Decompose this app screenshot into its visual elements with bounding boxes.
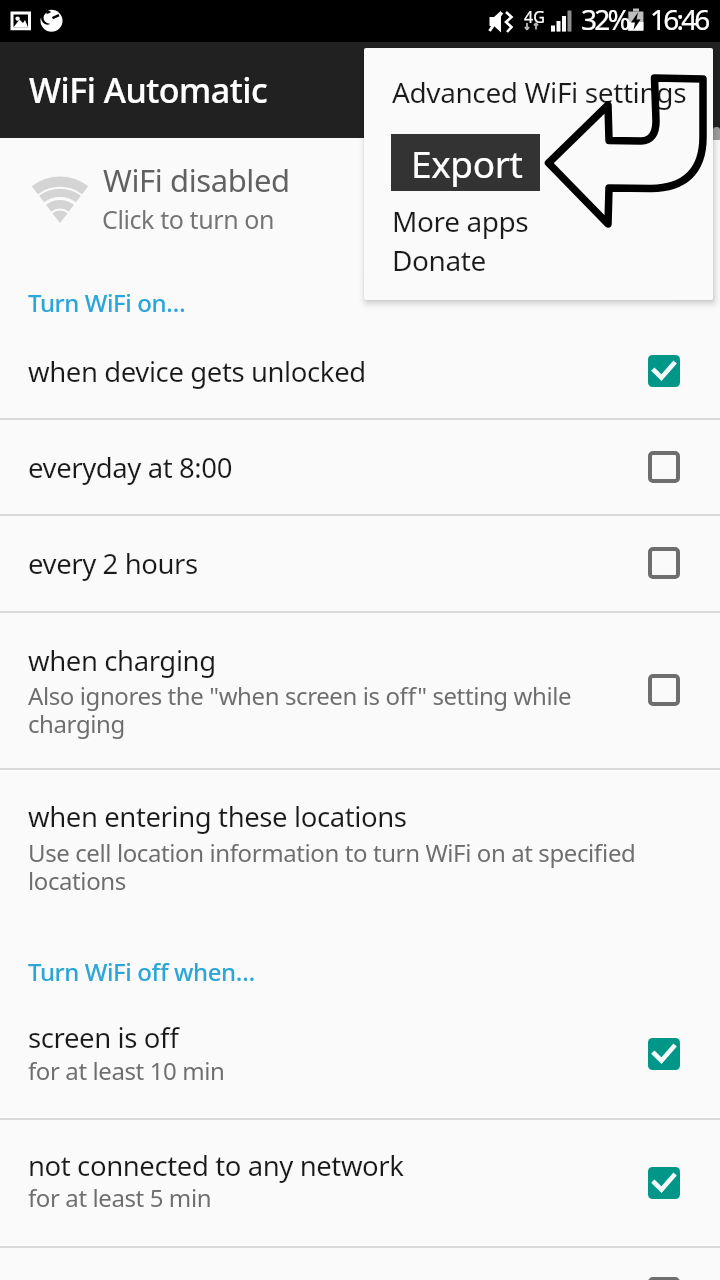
staticText: Export	[411, 138, 523, 188]
staticText: Donate	[392, 241, 486, 279]
staticText: WiFi disabled	[103, 159, 290, 201]
staticText: Click to turn on	[102, 202, 275, 236]
button[interactable]: WiFi disabled	[0, 140, 720, 285]
button[interactable]: Donate	[364, 234, 713, 286]
staticText: every 2 hours	[28, 545, 198, 582]
staticText: 16:46	[650, 0, 708, 38]
staticText: Turn WiFi on…	[28, 286, 186, 319]
staticText: Use cell location information to turn Wi…	[28, 836, 653, 897]
staticText: More apps	[392, 202, 529, 240]
staticText: Advanced WiFi settings	[392, 73, 687, 111]
staticText: screen is off	[28, 1019, 179, 1056]
button[interactable]: when device gets unlocked	[0, 330, 720, 418]
button[interactable]: everyday at 8:00	[0, 419, 720, 514]
staticText: when charging	[28, 642, 216, 679]
staticText: for at least 5 min	[28, 1181, 648, 1214]
staticText: when device gets unlocked	[28, 353, 366, 390]
button[interactable]: Export	[391, 134, 540, 191]
button[interactable]: when entering these locations	[0, 769, 720, 919]
staticText: for at least 10 min	[28, 1054, 648, 1087]
button[interactable]: More apps	[364, 195, 713, 247]
button[interactable]: Advanced WiFi settings	[364, 61, 713, 123]
staticText: everyday at 8:00	[28, 449, 233, 486]
staticText: Also ignores the "when screen is off" se…	[28, 679, 608, 740]
other: Arrow pointing at Export	[540, 70, 715, 235]
staticText: 4G	[524, 6, 545, 28]
staticText: when entering these locations	[28, 798, 407, 835]
button[interactable]: not connected to any network	[0, 1119, 720, 1246]
button[interactable]: when charging	[0, 612, 720, 768]
staticText: Turn WiFi off when…	[28, 955, 255, 988]
staticText: not connected to any network	[28, 1147, 404, 1184]
button[interactable]: every 2 hours	[0, 515, 720, 611]
button[interactable]: screen is off	[0, 1000, 720, 1118]
staticText: 32%	[581, 0, 628, 38]
staticText: WiFi Automatic	[29, 67, 268, 113]
